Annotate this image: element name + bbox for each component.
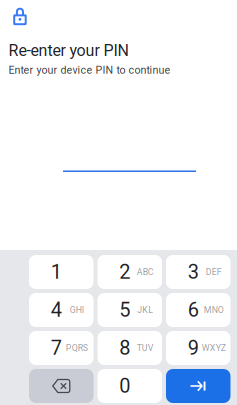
staticText: TUV (137, 343, 154, 353)
staticText: WXYZ (202, 343, 226, 353)
button[interactable]: 6 (166, 293, 230, 327)
staticText: MNO (204, 305, 224, 315)
staticText: 4 (51, 298, 62, 322)
button[interactable]: 2 (97, 255, 162, 289)
staticText: 1 (51, 260, 62, 284)
button[interactable]: 7 (29, 331, 93, 365)
button[interactable]: 1 (29, 255, 93, 289)
button[interactable]: 5 (97, 293, 162, 327)
staticText: 0 (119, 374, 130, 398)
button[interactable]: 9 (166, 331, 230, 365)
button[interactable]: 8 (97, 331, 162, 365)
button[interactable]: 3 (166, 255, 230, 289)
staticText: DEF (206, 267, 222, 277)
staticText: Re-enter your PIN (8, 41, 128, 60)
staticText: 2 (119, 260, 130, 284)
staticText: PQRS (66, 343, 88, 353)
staticText: GHI (70, 305, 84, 315)
staticText: JKL (137, 305, 153, 315)
staticText: 9 (188, 336, 199, 360)
button[interactable]: 0 (97, 369, 162, 403)
staticText: 8 (119, 336, 130, 360)
button[interactable]: Enter (166, 369, 230, 403)
button[interactable]: 4 (29, 293, 93, 327)
staticText: ABC (137, 267, 154, 277)
button[interactable]: Delete (29, 369, 93, 403)
staticText: 6 (188, 298, 199, 322)
staticText: 3 (188, 260, 199, 284)
staticText: 5 (119, 298, 130, 322)
staticText: 7 (51, 336, 62, 360)
staticText: Enter your device PIN to continue (8, 64, 170, 76)
